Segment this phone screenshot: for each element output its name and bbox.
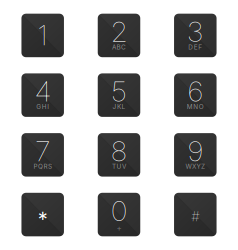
staticText: PQRS bbox=[33, 163, 52, 170]
button[interactable]: 5 bbox=[98, 73, 140, 117]
button[interactable]: 0 bbox=[98, 193, 140, 236]
staticText: 8 bbox=[111, 134, 127, 168]
button[interactable]: 7 bbox=[21, 133, 64, 177]
button[interactable]: 9 bbox=[174, 133, 217, 177]
staticText: 6 bbox=[188, 74, 203, 108]
button[interactable]: 1 bbox=[21, 14, 64, 57]
staticText: 2 bbox=[111, 15, 127, 49]
staticText: + bbox=[116, 223, 121, 233]
button[interactable]: 3 bbox=[174, 14, 217, 57]
staticText: TUV bbox=[112, 163, 126, 170]
staticText: 7 bbox=[35, 134, 50, 168]
staticText: 1 bbox=[38, 18, 48, 52]
staticText: # bbox=[191, 208, 199, 224]
button[interactable]: 4 bbox=[21, 73, 64, 117]
staticText: GHI bbox=[36, 103, 49, 111]
staticText: 0 bbox=[111, 194, 127, 228]
staticText: 9 bbox=[188, 134, 203, 168]
staticText: JKL bbox=[112, 103, 125, 111]
staticText: DEF bbox=[188, 43, 202, 51]
staticText: * bbox=[38, 207, 48, 231]
staticText: 5 bbox=[111, 74, 126, 108]
staticText: ABC bbox=[112, 43, 126, 51]
button[interactable]: * bbox=[21, 193, 64, 236]
button[interactable]: 2 bbox=[98, 14, 140, 57]
staticText: 4 bbox=[35, 74, 51, 108]
staticText: 3 bbox=[187, 15, 203, 49]
button[interactable]: 6 bbox=[174, 73, 217, 117]
button[interactable]: 8 bbox=[98, 133, 140, 177]
button[interactable]: # bbox=[174, 193, 217, 236]
staticText: WXYZ bbox=[186, 163, 205, 170]
staticText: MNO bbox=[187, 103, 204, 111]
